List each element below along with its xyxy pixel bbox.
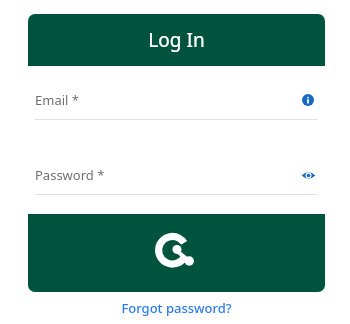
- button[interactable]: Submit: [28, 214, 325, 292]
- button[interactable]: Forgot password?: [28, 292, 325, 324]
- staticText: Email *: [35, 91, 298, 109]
- staticText: Forgot password?: [121, 299, 232, 317]
- button[interactable]: Email *: [35, 90, 318, 120]
- button[interactable]: Show password: [298, 165, 318, 185]
- staticText: Password *: [35, 166, 298, 184]
- button[interactable]: Email information: [298, 90, 318, 110]
- staticText: Log In: [148, 27, 205, 53]
- button[interactable]: Password *: [35, 165, 318, 195]
